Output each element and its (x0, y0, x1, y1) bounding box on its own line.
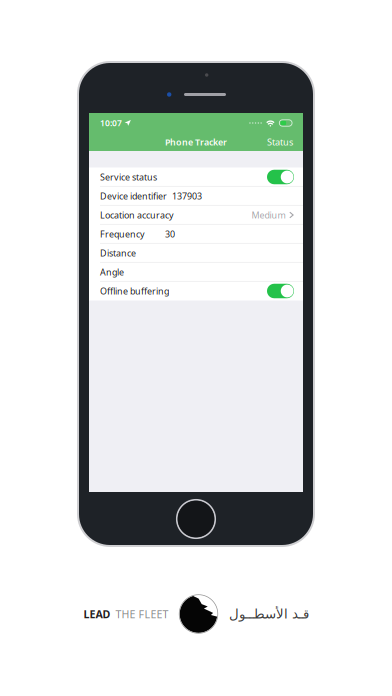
staticText: Offline buffering (100, 285, 169, 297)
staticText: 10:07 (100, 117, 122, 129)
staticText: Angle (100, 266, 124, 278)
staticText: Medium (251, 209, 285, 221)
staticText: Device identifier (100, 190, 167, 202)
button[interactable]: Service status (89, 167, 303, 186)
staticText: 137903 (172, 190, 202, 202)
button[interactable]: Status (263, 133, 297, 151)
staticText: قـد الأسطــول (228, 606, 308, 621)
button[interactable]: Distance (89, 243, 303, 262)
button[interactable]: Angle (89, 262, 303, 281)
staticText: 30 (165, 228, 175, 240)
staticText: Frequency (100, 228, 145, 240)
staticText: Service status (100, 171, 157, 183)
staticText: THE FLEET (115, 607, 168, 621)
staticText: LEAD (83, 607, 110, 621)
button[interactable]: Offline buffering (89, 281, 303, 300)
staticText: Distance (100, 247, 136, 259)
button[interactable]: Frequency (89, 224, 303, 243)
staticText: Phone Tracker (165, 136, 227, 148)
staticText: Status (267, 136, 293, 148)
button[interactable]: Location accuracy (89, 205, 303, 224)
staticText: Location accuracy (100, 209, 174, 221)
button[interactable]: Device identifier (89, 186, 303, 205)
